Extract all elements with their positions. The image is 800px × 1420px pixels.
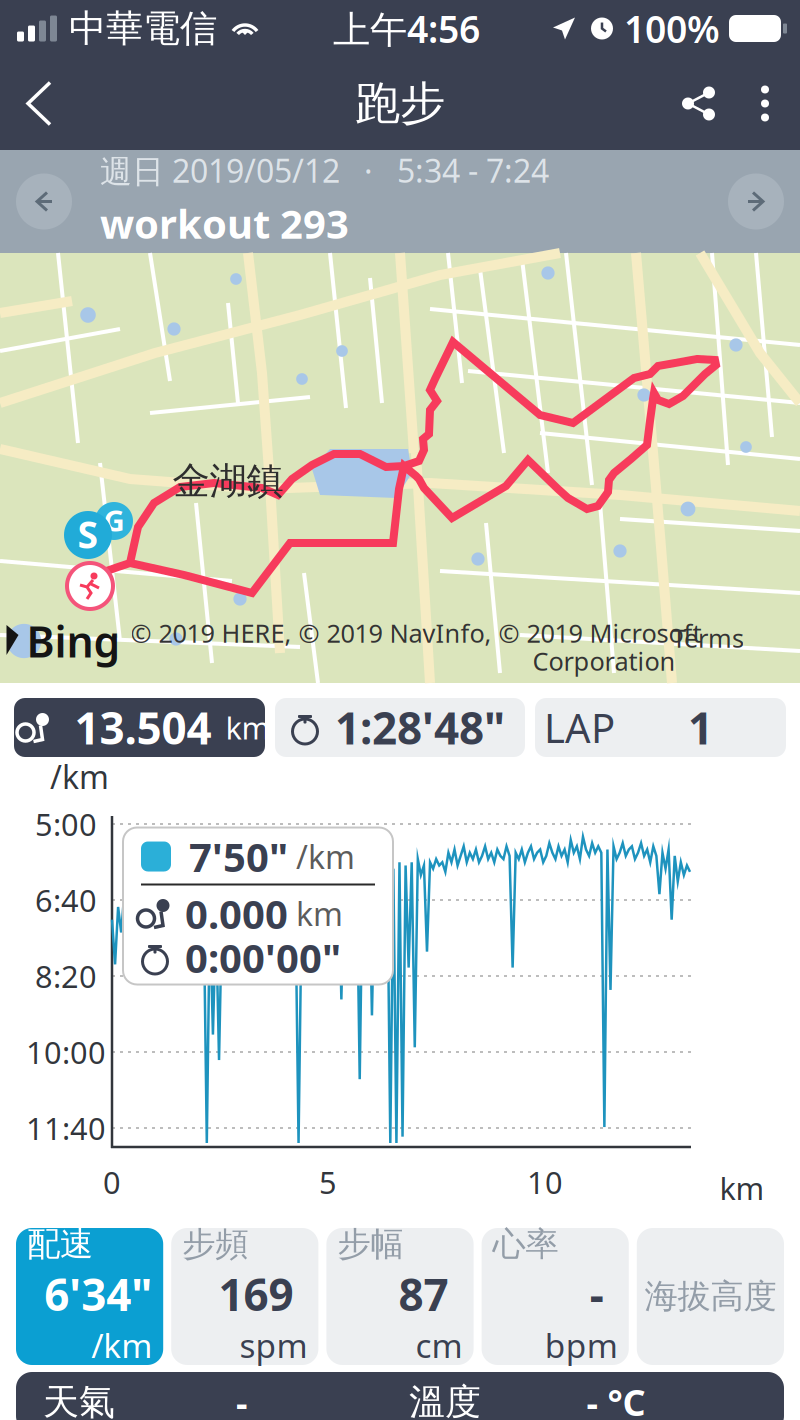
staticText: - — [236, 1378, 248, 1420]
staticText: bpm — [545, 1323, 618, 1367]
button[interactable]: 步頻 — [171, 1228, 318, 1365]
staticText: 中華電信 — [69, 6, 217, 51]
staticText: 金湖鎮 — [172, 458, 283, 504]
button[interactable]: 心率 — [482, 1228, 629, 1365]
staticText: 100% — [624, 4, 720, 53]
staticText: 0.000 — [185, 887, 288, 940]
staticText: Terms — [672, 621, 744, 655]
staticText: 海拔高度 — [644, 1276, 776, 1317]
staticText: 1 — [688, 698, 713, 757]
staticText: workout 293 — [100, 197, 349, 250]
staticText: - °C — [586, 1378, 645, 1420]
staticText: 0 — [103, 1162, 121, 1202]
button[interactable]: Share — [660, 80, 738, 126]
staticText: 上午4:56 — [333, 4, 480, 53]
staticText: © 2019 HERE, © 2019 NavInfo, © 2019 Micr… — [130, 616, 701, 650]
button[interactable]: 步幅 — [326, 1228, 474, 1365]
button[interactable]: Next workout — [722, 167, 790, 235]
staticText: 10:00 — [26, 1032, 106, 1072]
staticText: /km — [296, 835, 355, 878]
staticText: 溫度 — [409, 1380, 481, 1420]
staticText: - — [590, 1265, 604, 1323]
staticText: 跑步 — [355, 76, 445, 131]
staticText: 6:40 — [35, 880, 97, 920]
button[interactable]: Previous workout — [10, 167, 78, 235]
staticText: Bing — [26, 613, 120, 669]
button[interactable]: 配速 — [16, 1228, 163, 1365]
staticText: 5 — [319, 1162, 337, 1202]
staticText: 5:00 — [35, 804, 97, 844]
staticText: 心率 — [493, 1224, 559, 1265]
staticText: 1:28'48" — [335, 698, 505, 757]
staticText: 週日 2019/05/12 · 5:34 - 7:24 — [100, 149, 549, 192]
staticText: G — [103, 500, 124, 539]
button[interactable]: More options — [738, 81, 796, 125]
staticText: cm — [416, 1323, 463, 1367]
button[interactable]: Back — [4, 74, 78, 132]
staticText: 169 — [218, 1265, 293, 1323]
staticText: 配速 — [27, 1224, 93, 1265]
staticText: S — [77, 509, 98, 559]
staticText: 步幅 — [337, 1224, 403, 1265]
staticText: 6'34" — [44, 1265, 152, 1323]
button[interactable]: 海拔高度 — [637, 1228, 784, 1365]
staticText: /km — [91, 1323, 152, 1367]
staticText: /km — [50, 755, 109, 798]
staticText: 10 — [527, 1162, 563, 1202]
staticText: 0:00'00" — [185, 931, 341, 984]
staticText: km — [296, 892, 343, 935]
staticText: 天氣 — [43, 1380, 115, 1420]
staticText: 步頻 — [182, 1224, 248, 1265]
staticText: km — [225, 707, 270, 748]
staticText: km — [719, 1168, 764, 1208]
staticText: 8:20 — [35, 956, 97, 996]
staticText: 11:40 — [26, 1108, 106, 1148]
staticText: 7'50" — [189, 830, 288, 883]
staticText: Corporation — [532, 644, 675, 678]
staticText: spm — [239, 1323, 307, 1367]
staticText: LAP — [544, 701, 615, 754]
staticText: 13.504 — [74, 698, 211, 757]
staticText: 87 — [399, 1265, 449, 1323]
